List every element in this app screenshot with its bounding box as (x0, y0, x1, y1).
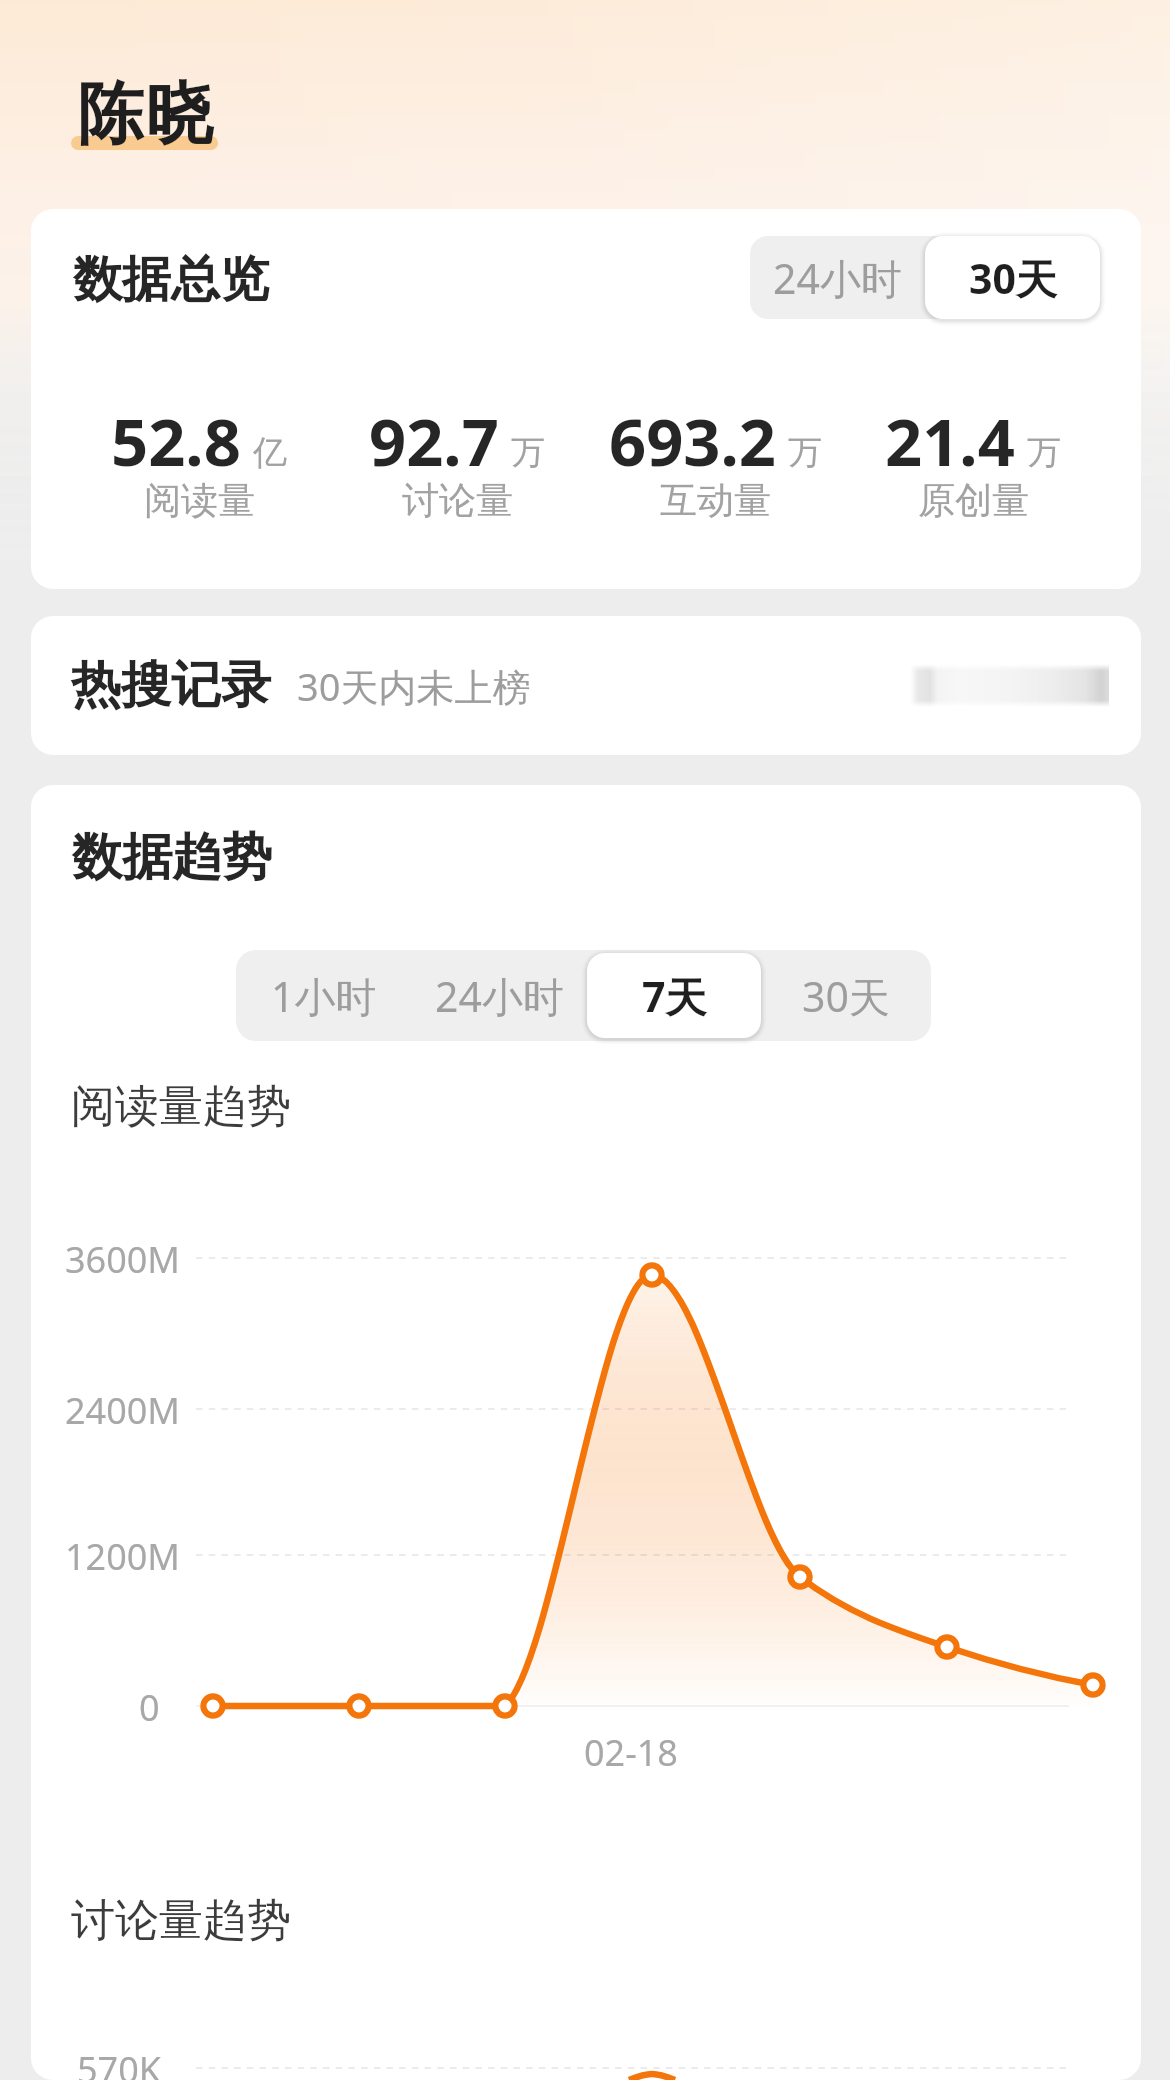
button[interactable]: 24小时 (412, 950, 587, 1041)
staticText: 互动量 (660, 477, 771, 524)
button[interactable]: 7天 (587, 950, 761, 1041)
staticText: 52.8 (111, 397, 241, 469)
staticText: 92.7 (369, 397, 499, 469)
staticText: 693.2 (609, 397, 776, 469)
staticText: 570K (77, 2045, 162, 2080)
staticText: 数据总览 (73, 249, 269, 311)
staticText: 24小时 (435, 968, 564, 1024)
staticText: 7天 (642, 968, 707, 1024)
staticText: 30天 (802, 968, 890, 1024)
staticText: 万 (788, 431, 822, 469)
staticText: 亿 (253, 431, 287, 469)
staticText: 1小时 (271, 968, 377, 1024)
staticText: 02-18 (584, 1728, 678, 1777)
staticText: 24小时 (773, 250, 902, 306)
staticText: 万 (511, 431, 545, 469)
staticText: 原创量 (918, 477, 1029, 524)
button[interactable]: 1小时 (236, 950, 412, 1041)
staticText: 1200M (65, 1532, 181, 1581)
button[interactable]: 30天 (761, 950, 931, 1041)
staticText: 阅读量 (144, 477, 255, 524)
staticText: 21.4 (885, 397, 1015, 469)
staticText: 万 (1027, 431, 1061, 469)
button[interactable]: 24小时 (750, 236, 925, 319)
staticText: 2400M (65, 1386, 181, 1435)
staticText: 热搜记录 (71, 654, 271, 717)
button[interactable]: 热搜记录 (31, 616, 1141, 755)
staticText: 30天 (969, 250, 1057, 306)
staticText: 讨论量 (402, 477, 513, 524)
staticText: 30天内未上榜 (297, 660, 531, 712)
staticText: 阅读量趋势 (71, 1079, 291, 1134)
staticText: 0 (139, 1683, 160, 1732)
staticText: 数据趋势 (72, 826, 272, 889)
staticText: 讨论量趋势 (71, 1893, 291, 1948)
staticText: 陈晓 (77, 72, 213, 156)
staticText: 3600M (65, 1235, 181, 1284)
button[interactable]: 30天 (925, 236, 1100, 319)
